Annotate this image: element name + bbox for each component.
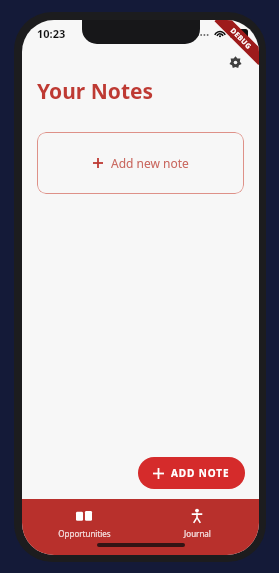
- staticText: DEBUG: [228, 26, 254, 52]
- staticText: Add new note: [111, 155, 189, 171]
- button[interactable]: Add new note: [37, 132, 244, 194]
- staticText: ADD NOTE: [171, 466, 230, 480]
- button[interactable]: Journal: [145, 506, 249, 541]
- staticText: Your Notes: [37, 77, 154, 106]
- staticText: Opportunities: [58, 528, 111, 539]
- button[interactable]: Opportunities: [32, 506, 136, 541]
- button[interactable]: Settings: [223, 50, 247, 74]
- button[interactable]: ADD NOTE: [138, 457, 245, 489]
- staticText: Journal: [184, 528, 211, 539]
- staticText: 10:23: [37, 26, 66, 41]
